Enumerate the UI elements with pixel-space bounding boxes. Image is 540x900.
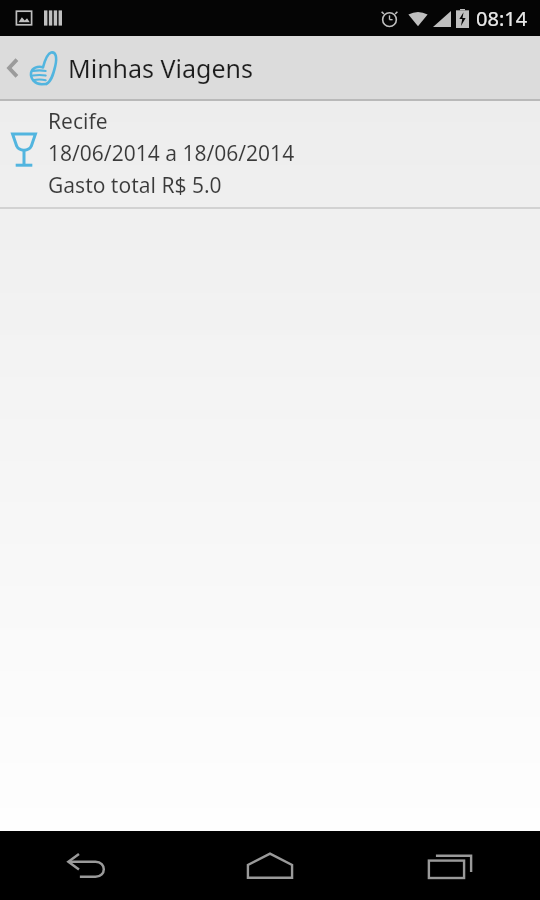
button[interactable]: Back: [0, 36, 66, 99]
button[interactable]: Recent apps: [360, 831, 540, 900]
button[interactable]: Home: [180, 831, 360, 900]
staticText: Minhas Viagens: [68, 51, 253, 85]
button[interactable]: Back: [0, 831, 180, 900]
staticText: 08:14: [476, 5, 528, 32]
button[interactable]: Recife: [0, 101, 540, 209]
staticText: 18/06/2014 a 18/06/2014: [48, 139, 295, 168]
staticText: Gasto total R$ 5.0: [48, 171, 222, 200]
staticText: Recife: [48, 107, 108, 136]
